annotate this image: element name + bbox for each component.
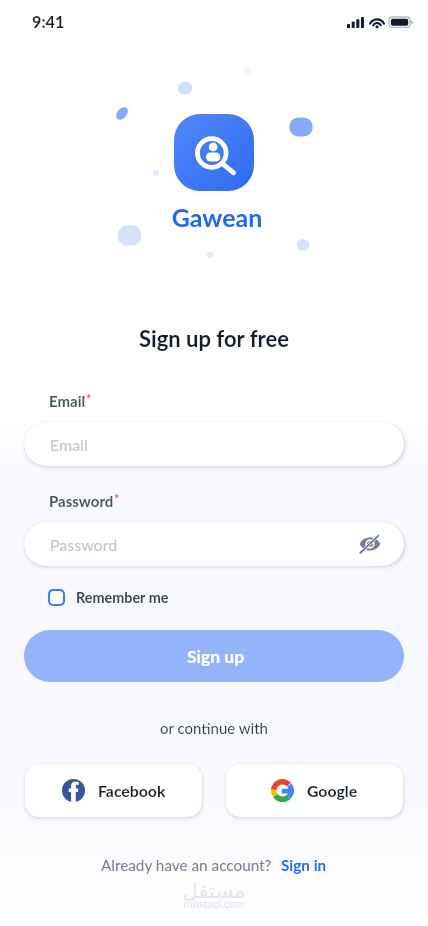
button[interactable]: Email <box>24 422 404 466</box>
staticText: Sign in <box>281 856 327 874</box>
button[interactable]: Password <box>24 522 404 566</box>
staticText: 9:41 <box>32 12 65 31</box>
button[interactable]: Sign in <box>281 856 327 874</box>
staticText: Google <box>307 781 358 800</box>
staticText: Password <box>49 492 114 510</box>
staticText: * <box>86 391 92 407</box>
staticText: Sign up <box>187 646 245 667</box>
button[interactable]: Show password <box>358 532 382 556</box>
button[interactable]: Google <box>226 764 403 817</box>
staticText: Remember me <box>76 589 169 606</box>
staticText: Facebook <box>98 781 166 800</box>
staticText: Email <box>49 392 86 410</box>
other: Gawean logo <box>174 114 254 191</box>
staticText: Gawean <box>3 202 428 232</box>
staticText: مستقل <box>0 879 428 903</box>
button[interactable]: Remember me <box>48 589 169 606</box>
staticText: Sign up for free <box>0 325 428 351</box>
button[interactable]: Facebook <box>25 764 202 817</box>
staticText: mostaql.com <box>0 897 428 910</box>
staticText: Email <box>50 435 88 454</box>
button[interactable]: Sign up <box>24 630 404 682</box>
staticText: * <box>114 491 120 507</box>
staticText: or continue with <box>0 719 428 737</box>
staticText: Already have an account? <box>101 856 272 874</box>
staticText: Password <box>50 535 118 554</box>
